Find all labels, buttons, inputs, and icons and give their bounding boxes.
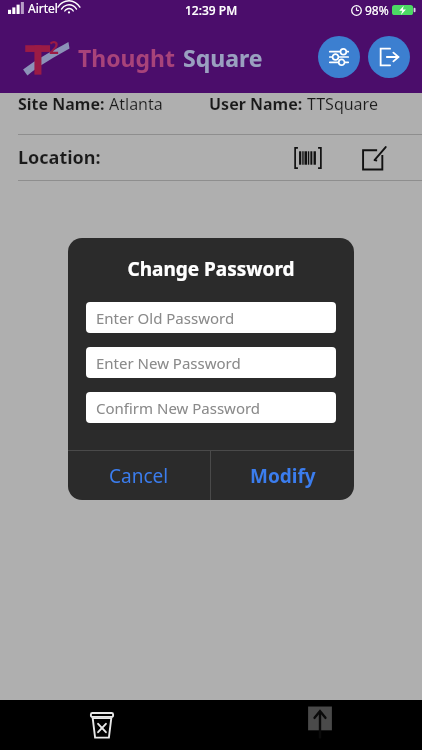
staticText: Modify [250,463,316,489]
button[interactable]: Cancel [68,451,210,500]
staticText: Cancel [109,463,169,489]
button[interactable]: Delete [76,700,128,750]
staticText: Thought [78,42,176,73]
staticText: TTSquare [307,93,378,115]
button[interactable]: Enter New Password [86,347,336,378]
button[interactable]: Enter Old Password [86,302,336,333]
button[interactable]: Settings [318,36,360,78]
staticText: Location: [18,145,101,170]
staticText: Enter Old Password [96,308,235,328]
staticText: Atlanta [109,93,163,115]
button[interactable]: Logout [368,36,410,78]
staticText: User Name: [209,93,307,115]
staticText: 12:39 PM [185,2,238,18]
staticText: 2 [49,36,59,59]
staticText: Confirm New Password [96,398,261,418]
staticText: 98% [365,2,389,18]
staticText: Enter New Password [96,353,241,373]
button[interactable]: Modify [211,451,354,500]
staticText: Change Password [68,256,354,282]
staticText: Square [183,42,263,73]
button[interactable]: Upload [294,700,346,750]
staticText: Airtel [28,0,58,16]
button[interactable]: Confirm New Password [86,392,336,423]
button[interactable]: Edit location [356,140,392,176]
staticText: Site Name: [18,93,109,115]
button[interactable]: Scan barcode [290,140,326,176]
